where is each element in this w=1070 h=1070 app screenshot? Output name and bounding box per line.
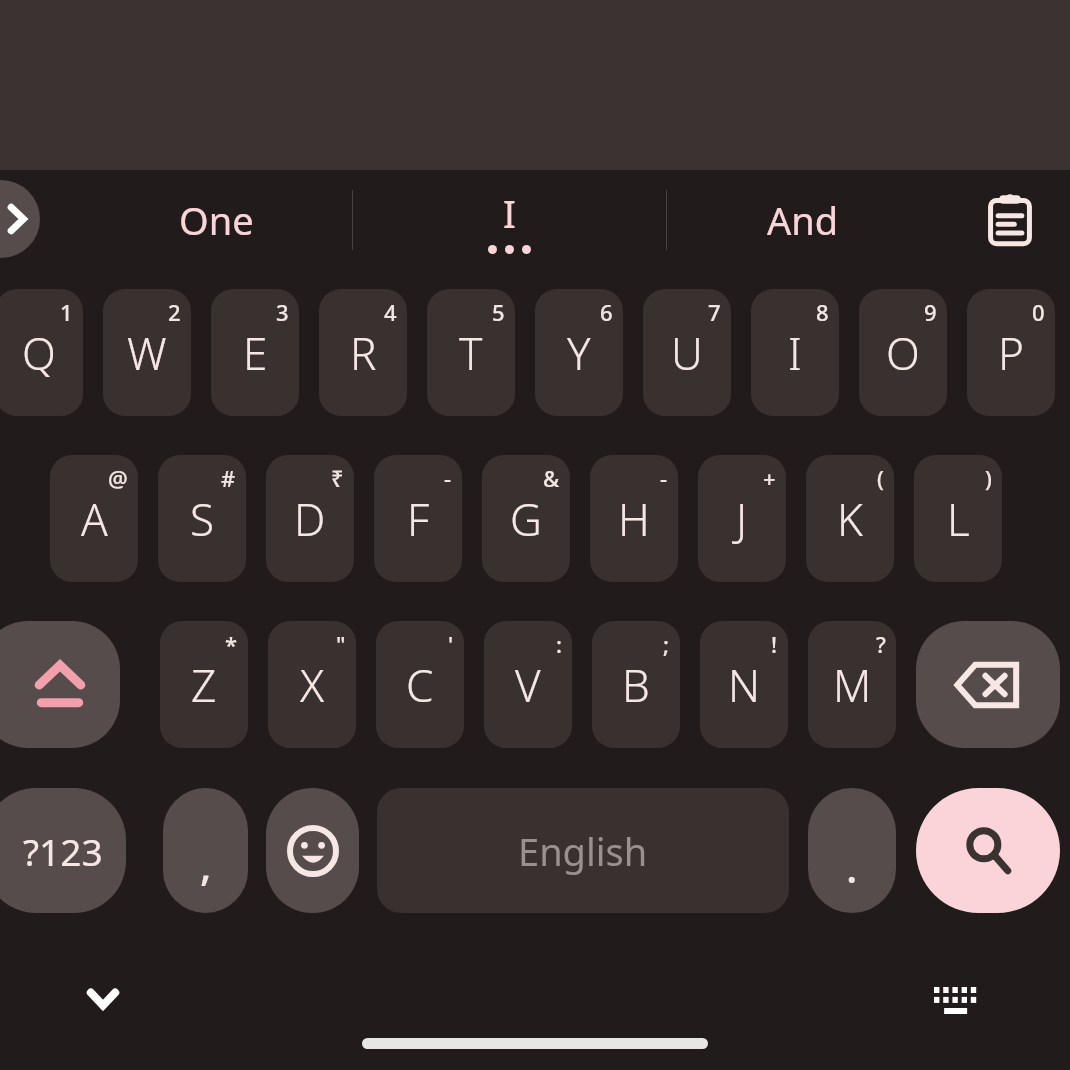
button[interactable]: D [266, 455, 354, 582]
button[interactable]: K [806, 455, 894, 582]
button[interactable]: M [808, 621, 896, 748]
staticText: J [736, 489, 748, 549]
staticText: ₹ [331, 463, 344, 493]
staticText: Y [567, 323, 591, 383]
button[interactable]: Z [160, 621, 248, 748]
staticText: R [350, 323, 377, 383]
button[interactable]: One [80, 170, 352, 270]
staticText: * [225, 629, 238, 659]
button[interactable]: J [698, 455, 786, 582]
button[interactable]: . [808, 788, 896, 913]
button[interactable]: U [643, 289, 731, 416]
button[interactable]: E [211, 289, 299, 416]
staticText: G [510, 489, 542, 549]
button[interactable]: H [590, 455, 678, 582]
staticText: 6 [600, 297, 613, 327]
staticText: S [190, 489, 215, 549]
button[interactable]: L [914, 455, 1002, 582]
staticText: And [767, 194, 839, 246]
staticText: H [618, 489, 650, 549]
button[interactable]: Caps lock [0, 621, 120, 748]
button[interactable]: Clipboard [950, 170, 1070, 270]
staticText: I [788, 323, 802, 383]
button[interactable]: I [751, 289, 839, 416]
staticText: & [543, 463, 560, 493]
staticText: F [407, 489, 430, 549]
button[interactable]: C [376, 621, 464, 748]
button[interactable]: Q [0, 289, 83, 416]
button[interactable]: And [666, 170, 940, 270]
staticText: - [444, 463, 452, 493]
staticText: 7 [708, 297, 721, 327]
staticText: A [81, 489, 108, 549]
button[interactable]: Emoji [266, 788, 359, 913]
staticText: + [763, 463, 776, 493]
staticText: ?123 [23, 826, 103, 876]
staticText: Q [22, 323, 56, 383]
button[interactable]: F [374, 455, 462, 582]
staticText: : [556, 629, 562, 659]
staticText: ? [876, 629, 886, 659]
staticText: W [127, 323, 167, 383]
staticText: ! [771, 629, 778, 659]
staticText: Z [191, 655, 217, 715]
staticText: ; [663, 629, 670, 659]
staticText: L [947, 489, 970, 549]
button[interactable]: P [967, 289, 1055, 416]
button[interactable]: Search [916, 788, 1060, 913]
staticText: 2 [168, 297, 181, 327]
button[interactable]: Backspace [916, 621, 1060, 748]
staticText: M [833, 655, 872, 715]
staticText: @ [108, 463, 128, 493]
button[interactable]: , [163, 788, 248, 913]
button[interactable]: X [268, 621, 356, 748]
staticText: # [221, 463, 236, 493]
staticText: , [200, 836, 212, 893]
staticText: E [243, 323, 268, 383]
staticText: P [998, 323, 1024, 383]
staticText: . [846, 838, 858, 895]
staticText: X [300, 655, 325, 715]
button[interactable]: R [319, 289, 407, 416]
staticText: 1 [60, 297, 73, 327]
staticText: K [837, 489, 863, 549]
staticText: 4 [384, 297, 397, 327]
button[interactable]: I [352, 170, 666, 270]
staticText: I [503, 187, 516, 239]
button[interactable]: Expand toolbar [0, 180, 40, 258]
button[interactable]: V [484, 621, 572, 748]
button[interactable]: English [377, 788, 789, 913]
staticText: O [886, 323, 920, 383]
staticText: " [336, 629, 346, 659]
button[interactable]: Y [535, 289, 623, 416]
staticText: V [515, 655, 541, 715]
button[interactable]: B [592, 621, 680, 748]
staticText: D [294, 489, 326, 549]
staticText: C [406, 655, 434, 715]
staticText: - [660, 463, 668, 493]
staticText: 8 [816, 297, 829, 327]
staticText: B [622, 655, 650, 715]
staticText: ' [448, 629, 454, 659]
staticText: 3 [276, 297, 289, 327]
staticText: 9 [924, 297, 937, 327]
button[interactable]: O [859, 289, 947, 416]
button[interactable]: T [427, 289, 515, 416]
button[interactable]: Hide keyboard [60, 955, 146, 1041]
staticText: ( [877, 463, 884, 493]
staticText: English [518, 825, 648, 877]
staticText: N [728, 655, 761, 715]
button[interactable]: ?123 [0, 788, 126, 913]
staticText: ) [985, 463, 992, 493]
staticText: One [179, 194, 254, 246]
staticText: T [459, 323, 483, 383]
button[interactable]: W [103, 289, 191, 416]
button[interactable]: A [50, 455, 138, 582]
button[interactable]: G [482, 455, 570, 582]
button[interactable]: N [700, 621, 788, 748]
button[interactable]: Switch keyboard [910, 955, 1004, 1049]
staticText: 5 [492, 297, 505, 327]
staticText: 0 [1032, 297, 1045, 327]
staticText: U [671, 323, 703, 383]
button[interactable]: S [158, 455, 246, 582]
